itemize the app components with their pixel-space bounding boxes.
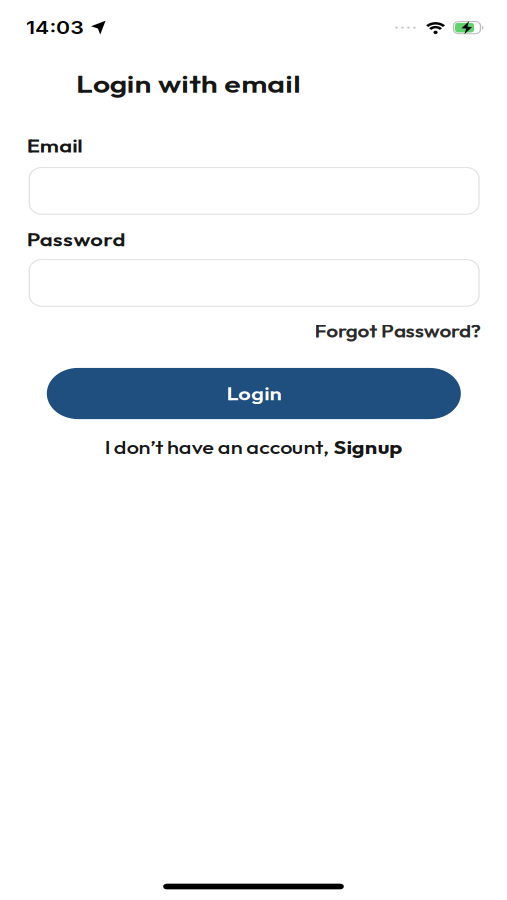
staticText: Email xyxy=(20,126,63,147)
button[interactable]: Password xyxy=(22,243,369,288)
staticText: Forgot Password? xyxy=(242,301,370,321)
staticText: Password xyxy=(20,214,96,235)
button[interactable]: Signup xyxy=(256,409,309,430)
staticText: Login xyxy=(174,358,216,380)
button[interactable]: Login xyxy=(36,345,354,393)
staticText: Login with email xyxy=(58,64,231,93)
staticText: 14:03 xyxy=(20,16,64,36)
staticText: I don’t have an account, xyxy=(80,409,256,430)
button[interactable]: Forgot Password? xyxy=(242,301,370,321)
button[interactable]: Email xyxy=(22,156,369,201)
staticText: Signup xyxy=(256,409,309,430)
